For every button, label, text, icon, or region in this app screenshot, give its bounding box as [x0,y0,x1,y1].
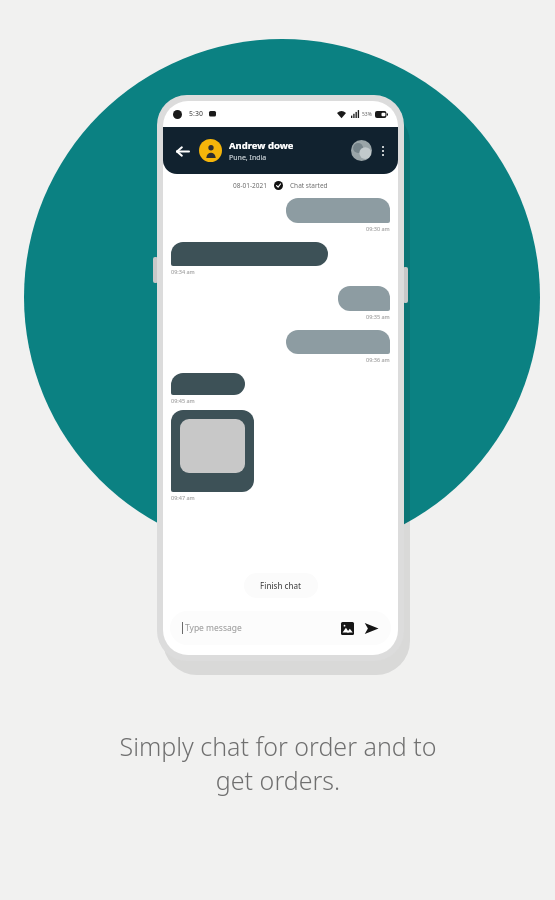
staticText: 09:30 am [366,225,390,232]
staticText: Simply chat for order and to get orders. [119,729,437,797]
button[interactable] [338,286,390,311]
staticText: 53% [362,111,372,118]
staticText: 08-01-2021 [233,181,267,190]
staticText: Chat started [290,181,328,190]
button[interactable]: Type message [182,611,379,645]
staticText: 09:34 am [171,268,195,275]
staticText: Andrew dowe [229,139,294,152]
staticText: 5:30 [189,109,203,119]
button[interactable] [286,198,390,223]
button[interactable]: Send [364,621,379,636]
button[interactable]: Finish chat [244,573,318,598]
staticText: 09:47 am [171,494,195,501]
button[interactable]: Attach image [341,622,354,635]
button[interactable] [171,242,328,266]
button[interactable] [286,330,390,354]
staticText: Finish chat [260,580,302,591]
staticText: Type message [185,622,242,634]
button[interactable]: Profile photo [351,140,372,161]
staticText: Pune, India [229,153,267,163]
button[interactable]: Back [172,141,192,161]
button[interactable]: More options [377,140,389,162]
button[interactable] [180,419,245,473]
staticText: 09:35 am [366,313,390,320]
button[interactable] [171,373,245,395]
staticText: 09:36 am [366,356,390,363]
staticText: 09:45 am [171,397,195,404]
